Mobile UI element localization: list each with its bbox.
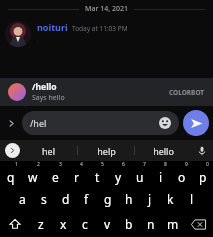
staticText: 7	[143, 161, 146, 168]
staticText: i	[159, 169, 163, 185]
staticText: .	[37, 35, 39, 45]
staticText: v	[104, 216, 111, 232]
button[interactable]: Shift	[0, 212, 30, 236]
button[interactable]: Send	[183, 110, 209, 136]
staticText: 4	[80, 161, 83, 168]
button[interactable]: n	[140, 212, 162, 236]
button[interactable]: 9	[171, 162, 192, 186]
button[interactable]: /hel	[22, 111, 179, 135]
button[interactable]: d	[55, 187, 76, 211]
staticText: 3	[59, 161, 62, 168]
button[interactable]: c	[74, 212, 96, 236]
staticText: r	[74, 169, 79, 185]
staticText: u	[136, 169, 144, 185]
staticText: p	[199, 169, 207, 185]
button[interactable]: 0	[192, 162, 213, 186]
staticText: COLORBOT	[169, 88, 205, 97]
button[interactable]: 3	[44, 162, 66, 186]
staticText: f	[84, 191, 89, 207]
staticText: hello	[153, 145, 174, 157]
staticText: c	[82, 216, 88, 232]
staticText: 1	[15, 161, 18, 168]
staticText: d	[62, 191, 70, 207]
button[interactable]: 8	[150, 162, 171, 186]
staticText: 2	[37, 161, 40, 168]
staticText: o	[178, 169, 186, 185]
button[interactable]: h	[118, 187, 139, 211]
button[interactable]: 5	[87, 162, 108, 186]
button[interactable]: s	[33, 187, 55, 211]
button[interactable]: 4	[66, 162, 87, 186]
staticText: t	[95, 169, 100, 185]
staticText: j	[148, 191, 152, 207]
staticText: Says hello	[32, 93, 65, 103]
staticText: y	[115, 169, 122, 185]
staticText: q	[7, 169, 15, 185]
staticText: m	[167, 216, 179, 232]
staticText: Today at 11:03 PM	[72, 24, 128, 33]
staticText: hel	[42, 145, 55, 157]
staticText: 9	[185, 161, 188, 168]
button[interactable]: j	[139, 187, 160, 211]
staticText: Mar 14, 2021	[85, 4, 128, 14]
button[interactable]: v	[96, 212, 118, 236]
staticText: w	[28, 169, 38, 185]
staticText: 0	[206, 161, 209, 168]
button[interactable]: help	[78, 140, 134, 161]
staticText: x	[60, 216, 67, 232]
staticText: 6	[122, 161, 125, 168]
button[interactable]: Backspace	[184, 212, 213, 236]
staticText: s	[41, 191, 47, 207]
button[interactable]: f	[76, 187, 97, 211]
staticText: 8	[164, 161, 167, 168]
button[interactable]: l	[181, 187, 202, 211]
button[interactable]: k	[160, 187, 181, 211]
button[interactable]: g	[97, 187, 118, 211]
button[interactable]: b	[118, 212, 140, 236]
button[interactable]: /hello	[0, 78, 213, 106]
button[interactable]: a	[11, 187, 33, 211]
button[interactable]: Open commands	[0, 106, 22, 140]
staticText: /hel	[30, 117, 159, 129]
button[interactable]: hel	[20, 140, 77, 161]
staticText: h	[125, 191, 133, 207]
staticText: a	[19, 191, 26, 207]
button[interactable]: 6	[108, 162, 129, 186]
button[interactable]: Voice input	[191, 140, 213, 161]
staticText: e	[52, 169, 59, 185]
button[interactable]: 2	[22, 162, 44, 186]
button[interactable]: hello	[135, 140, 191, 161]
button[interactable]: m	[162, 212, 184, 236]
button[interactable]: More suggestions	[5, 143, 20, 158]
staticText: noituri	[37, 21, 68, 33]
staticText: help	[97, 145, 116, 157]
button[interactable]: x	[52, 212, 74, 236]
staticText: /hello	[32, 81, 57, 93]
button[interactable]: 1	[0, 162, 22, 186]
staticText: l	[190, 191, 194, 207]
staticText: k	[167, 191, 174, 207]
staticText: 5	[101, 161, 104, 168]
staticText: z	[38, 216, 44, 232]
button[interactable]: Emoji	[159, 117, 171, 129]
staticText: g	[104, 191, 112, 207]
staticText: n	[147, 216, 155, 232]
button[interactable]: z	[30, 212, 52, 236]
staticText: b	[125, 216, 133, 232]
button[interactable]: 7	[129, 162, 150, 186]
